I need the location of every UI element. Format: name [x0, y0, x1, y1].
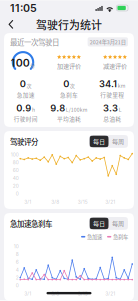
staticText: 每周: [112, 137, 124, 146]
button[interactable]: 每日: [90, 136, 108, 147]
staticText: 2024年3月21日: [90, 38, 126, 46]
staticText: 100: [11, 152, 19, 158]
staticText: 11:05: [10, 1, 37, 14]
staticText: h: [32, 106, 35, 113]
staticText: 加速评价: [57, 61, 81, 70]
staticText: 3/1: [24, 291, 31, 297]
staticText: 急加速: [17, 91, 35, 99]
staticText: 每日: [93, 137, 105, 146]
staticText: 急加速: [87, 233, 102, 241]
staticText: 急刹车: [60, 91, 78, 99]
staticText: 每日: [93, 219, 105, 228]
staticText: 3/15: [78, 199, 88, 205]
staticText: 10: [14, 244, 19, 249]
staticText: 分: [30, 62, 35, 69]
staticText: 次: [26, 82, 31, 89]
staticText: 3/15: [78, 291, 88, 297]
staticText: 3/21: [105, 199, 115, 205]
staticText: 3/8: [51, 291, 59, 297]
staticText: 9.8: [50, 102, 65, 114]
staticText: L/100km: [66, 106, 88, 113]
button[interactable]: 每日: [90, 218, 108, 229]
staticText: 20: [13, 183, 19, 189]
button[interactable]: 返回: [4, 18, 18, 31]
staticText: 急刹车: [113, 233, 128, 241]
staticText: 3.3: [103, 102, 118, 114]
staticText: 每周: [112, 219, 124, 228]
staticText: 3/1: [24, 199, 31, 205]
button[interactable]: 每周: [108, 136, 127, 147]
staticText: 3/8: [51, 199, 59, 205]
staticText: 行驶里程: [100, 91, 124, 99]
staticText: 减速评价: [103, 61, 127, 70]
staticText: 80: [13, 160, 19, 165]
staticText: 平均油耗: [57, 115, 81, 123]
staticText: 0: [63, 78, 69, 90]
staticText: 最近一次驾驶日: [10, 36, 59, 47]
staticText: 0.9: [16, 102, 31, 114]
staticText: 驾驶行为统计: [36, 17, 102, 32]
staticText: 急加速急刹车: [10, 218, 52, 229]
staticText: L: [119, 106, 122, 113]
staticText: 4: [16, 267, 19, 273]
staticText: km: [118, 82, 126, 89]
staticText: 60: [13, 167, 19, 173]
staticText: 8: [16, 251, 19, 257]
button[interactable]: 每周: [108, 218, 127, 229]
staticText: 行驶时间: [14, 115, 38, 123]
staticText: 2: [16, 275, 19, 281]
staticText: 3/21: [105, 291, 115, 297]
staticText: 0: [16, 191, 19, 197]
staticText: 6: [16, 259, 19, 265]
staticText: 100: [11, 56, 30, 69]
staticText: 总油耗: [103, 115, 121, 123]
staticText: 次: [70, 82, 75, 89]
staticText: 40: [13, 175, 19, 181]
staticText: 0: [20, 78, 26, 90]
staticText: 34.1: [99, 78, 117, 90]
staticText: 0: [16, 283, 19, 288]
staticText: 驾驶评分: [10, 136, 38, 147]
